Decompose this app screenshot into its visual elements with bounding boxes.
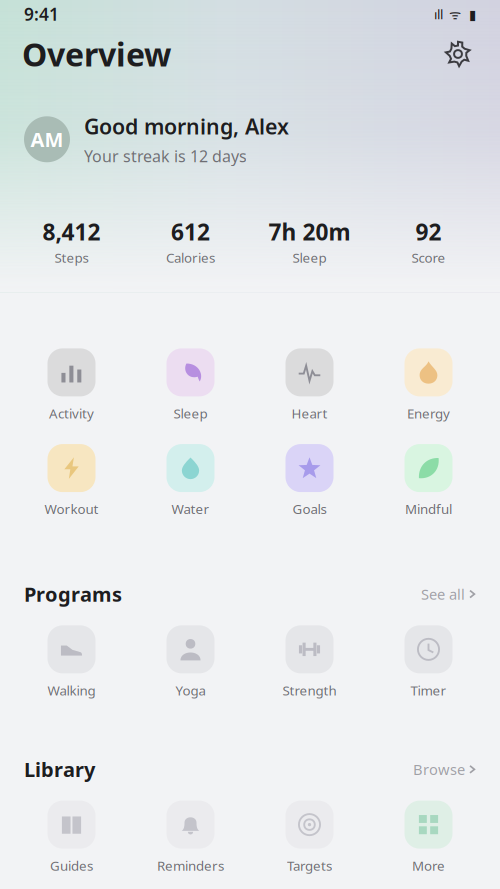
staticText: Targets	[287, 857, 332, 874]
staticText: Library	[24, 756, 95, 783]
staticText: Mindful	[405, 500, 452, 518]
staticText: ıll ᯤ ▮	[434, 5, 476, 23]
button[interactable]: Settings	[438, 34, 478, 74]
staticText: Strength	[282, 681, 336, 699]
staticText: 92	[415, 217, 441, 247]
staticText: Browse	[413, 760, 465, 779]
staticText: 612	[171, 217, 210, 247]
button[interactable]: Strength	[250, 625, 369, 699]
staticText: Guides	[50, 857, 93, 874]
button[interactable]: Browse	[413, 760, 476, 779]
staticText: Overview	[22, 33, 171, 75]
staticText: Yoga	[175, 681, 205, 699]
button[interactable]: Walking	[12, 625, 131, 699]
staticText: Goals	[292, 500, 326, 518]
staticText: Reminders	[157, 857, 224, 874]
staticText: 9:41	[24, 2, 59, 25]
staticText: Sleep	[173, 404, 207, 422]
button[interactable]: Goals	[250, 444, 369, 518]
staticText: Workout	[44, 500, 98, 518]
staticText: Activity	[49, 404, 94, 422]
button[interactable]: Heart	[250, 348, 369, 422]
button[interactable]: Timer	[369, 625, 488, 699]
button[interactable]: Activity	[12, 348, 131, 422]
staticText: Heart	[291, 404, 327, 422]
button[interactable]: Yoga	[131, 625, 250, 699]
staticText: Calories	[166, 249, 215, 266]
button[interactable]: Reminders	[131, 801, 250, 874]
button[interactable]: Guides	[12, 801, 131, 874]
button[interactable]: Mindful	[369, 444, 488, 518]
staticText: Good morning, Alex	[84, 112, 289, 140]
staticText: Programs	[24, 581, 122, 607]
button[interactable]: Targets	[250, 801, 369, 874]
staticText: Energy	[407, 404, 450, 422]
button[interactable]: More	[369, 801, 488, 874]
staticText: Walking	[47, 681, 95, 699]
staticText: Steps	[54, 249, 88, 266]
staticText: 7h 20m	[268, 217, 350, 247]
button[interactable]: Sleep	[131, 348, 250, 422]
staticText: Your streak is 12 days	[84, 145, 247, 166]
staticText: More	[412, 857, 445, 874]
button[interactable]: Energy	[369, 348, 488, 422]
staticText: See all	[421, 584, 465, 604]
staticText: Water	[171, 500, 209, 518]
staticText: AM	[30, 126, 63, 153]
staticText: Timer	[410, 681, 446, 699]
staticText: Score	[411, 249, 445, 266]
button[interactable]: Water	[131, 444, 250, 518]
button[interactable]: See all	[421, 584, 476, 604]
staticText: Sleep	[292, 249, 326, 266]
button[interactable]: Workout	[12, 444, 131, 518]
staticText: 8,412	[42, 217, 100, 247]
